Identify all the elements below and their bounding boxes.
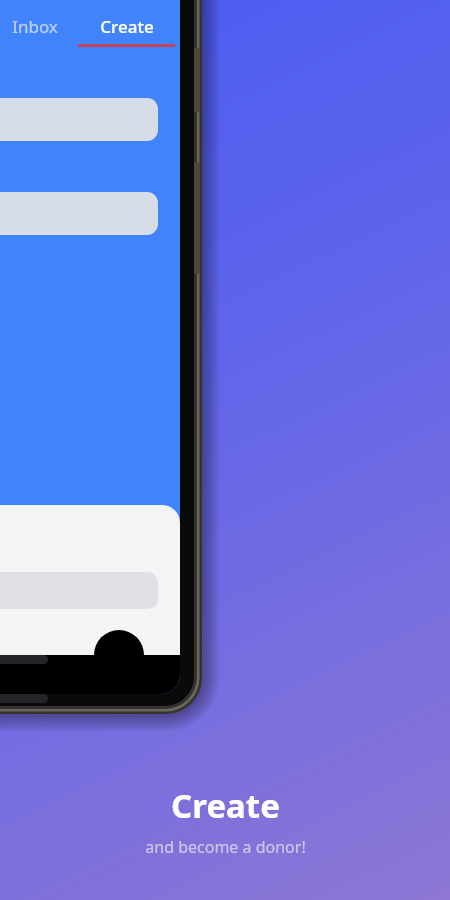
staticText: Create bbox=[171, 783, 280, 828]
staticText: Create bbox=[100, 15, 154, 38]
button[interactable]: Inbox bbox=[6, 12, 64, 41]
button[interactable]: Create bbox=[78, 12, 175, 47]
staticText: and become a donor! bbox=[145, 836, 306, 858]
staticText: Inbox bbox=[12, 15, 58, 38]
